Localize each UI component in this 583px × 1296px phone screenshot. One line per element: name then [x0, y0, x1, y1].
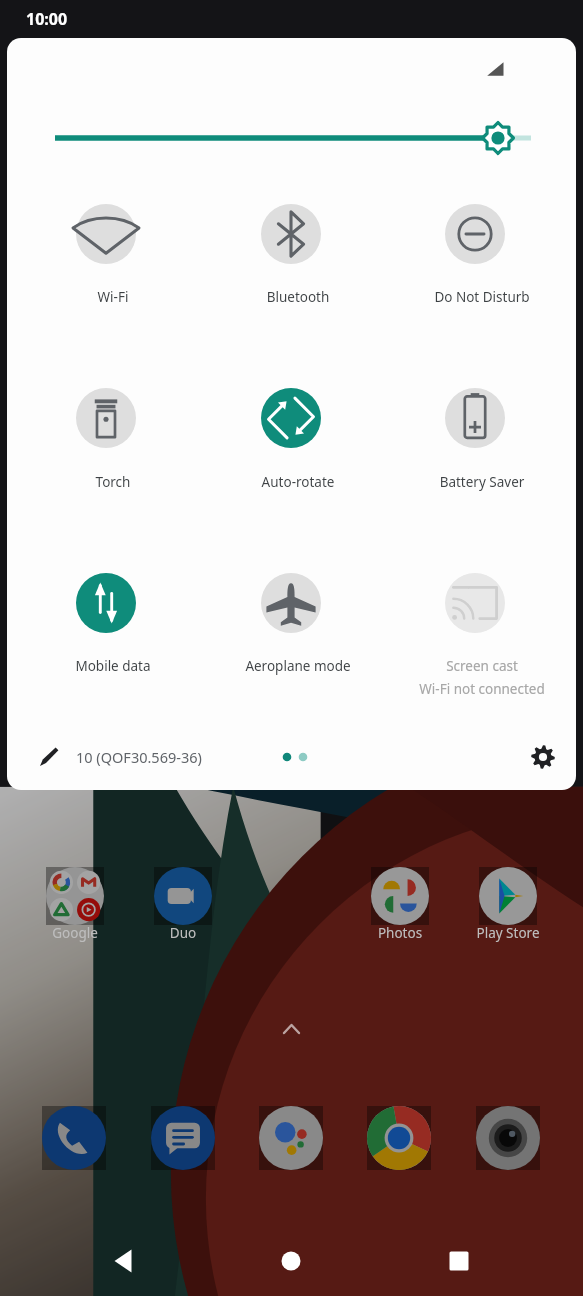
button[interactable] — [50, 382, 170, 490]
staticText: Torch — [13, 473, 213, 491]
button[interactable] — [419, 567, 539, 675]
button[interactable] — [39, 862, 111, 952]
button[interactable]: Edit — [27, 735, 71, 779]
staticText: Wi-Fi not connected — [382, 680, 576, 698]
staticText: Aeroplane mode — [198, 657, 398, 675]
staticText: Google — [0, 924, 175, 942]
staticText: Bluetooth — [198, 288, 398, 306]
button[interactable] — [235, 382, 355, 490]
staticText: Screen cast — [382, 657, 576, 675]
staticText: Play Store — [408, 924, 583, 942]
staticText: Photos — [300, 924, 500, 942]
button[interactable]: Recents — [425, 1237, 493, 1285]
staticText: Battery Saver — [382, 473, 576, 491]
button[interactable]: Back — [90, 1237, 158, 1285]
button[interactable] — [472, 862, 544, 952]
staticText: Mobile data — [13, 657, 213, 675]
staticText: 10:00 — [26, 8, 68, 30]
button[interactable] — [235, 198, 355, 306]
other: Mobile signal — [485, 60, 507, 82]
staticText: Do Not Disturb — [382, 288, 576, 306]
staticText: Duo — [83, 924, 283, 942]
staticText: 10 (QOF30.569-36) — [76, 747, 202, 767]
button[interactable] — [235, 567, 355, 675]
staticText: Auto-rotate — [198, 473, 398, 491]
staticText: Wi-Fi — [13, 288, 213, 306]
button[interactable] — [50, 198, 170, 306]
button[interactable]: Phone — [42, 1106, 106, 1170]
button[interactable] — [419, 198, 539, 306]
button[interactable] — [419, 382, 539, 490]
button[interactable]: Home — [257, 1237, 325, 1285]
button[interactable] — [364, 862, 436, 952]
button[interactable]: Chrome — [367, 1106, 431, 1170]
button[interactable] — [147, 862, 219, 952]
button[interactable]: Brightness — [49, 118, 537, 158]
button[interactable]: Messages — [151, 1106, 215, 1170]
button[interactable]: Assistant — [259, 1106, 323, 1170]
button[interactable] — [50, 567, 170, 675]
button[interactable]: Camera — [476, 1106, 540, 1170]
button[interactable]: Settings — [521, 735, 565, 779]
